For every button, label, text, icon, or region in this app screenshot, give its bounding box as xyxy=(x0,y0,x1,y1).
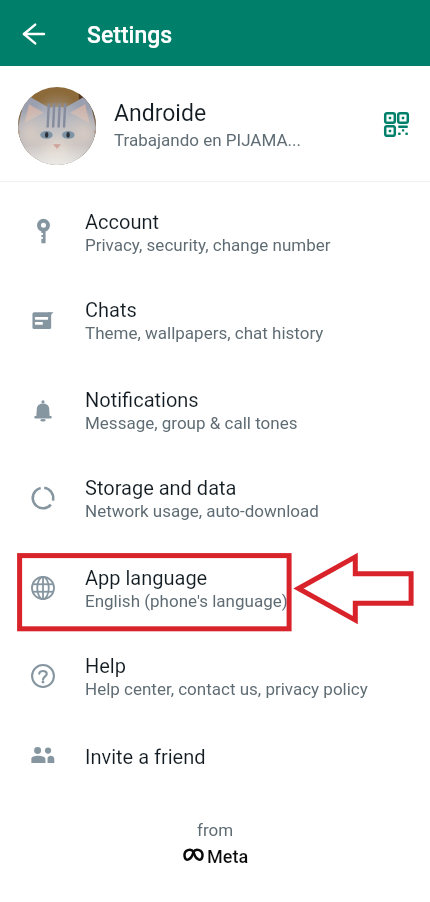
staticText: Theme, wallpapers, chat history xyxy=(85,323,324,343)
staticText: Settings xyxy=(87,22,173,49)
staticText: Chats xyxy=(85,298,137,321)
button[interactable]: Chats xyxy=(0,276,430,364)
button[interactable]: Storage and data xyxy=(0,454,430,542)
button[interactable]: Help xyxy=(0,632,430,720)
staticText: Androide xyxy=(114,100,207,127)
staticText: Meta xyxy=(207,846,249,867)
button[interactable]: Notifications xyxy=(0,366,430,454)
staticText: Notifications xyxy=(85,388,199,411)
staticText: from xyxy=(197,820,234,840)
button[interactable]: Back xyxy=(14,14,54,54)
button[interactable]: QR code xyxy=(384,112,409,137)
staticText: Account xyxy=(85,210,160,233)
staticText: Help xyxy=(85,654,126,677)
staticText: App language xyxy=(85,566,208,589)
staticText: Privacy, security, change number xyxy=(85,235,331,255)
staticText: Trabajando en PIJAMA... xyxy=(114,130,301,150)
staticText: Help center, contact us, privacy policy xyxy=(85,679,368,699)
button[interactable]: Invite a friend xyxy=(0,711,430,799)
button[interactable]: Account xyxy=(0,188,430,276)
staticText: Invite a friend xyxy=(85,745,206,768)
staticText: Network usage, auto-download xyxy=(85,501,319,521)
button[interactable]: Androide xyxy=(0,66,430,181)
button[interactable]: App language xyxy=(0,544,430,632)
staticText: English (phone's language) xyxy=(85,591,288,611)
staticText: Storage and data xyxy=(85,476,237,499)
staticText: Message, group & call tones xyxy=(85,413,298,433)
